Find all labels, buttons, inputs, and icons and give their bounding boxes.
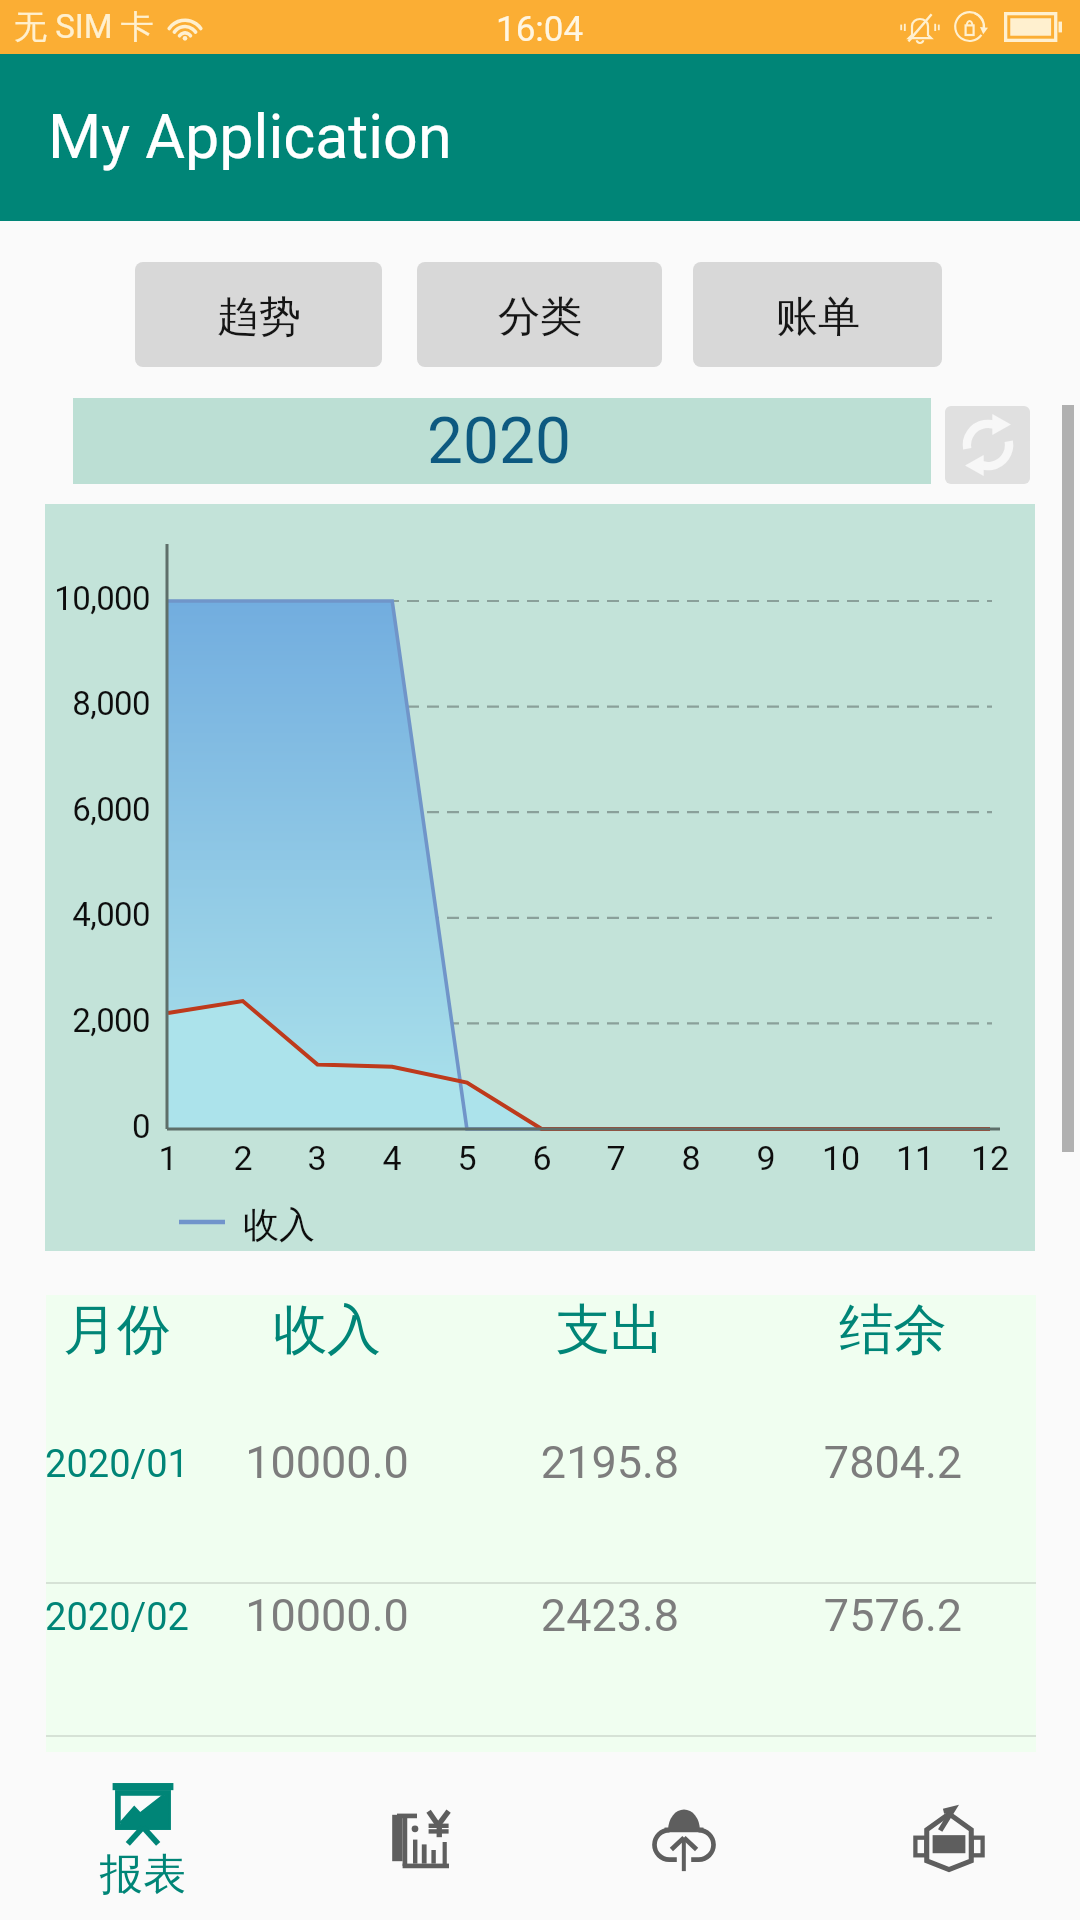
staticText: 2020: [427, 404, 571, 479]
staticText: 8,000: [0, 684, 150, 723]
staticText: 10000.0: [177, 1742, 477, 1795]
staticText: My Application: [48, 101, 452, 172]
staticText: 1967.0: [460, 1742, 760, 1795]
staticText: 收入: [177, 1296, 477, 1364]
staticText: 0: [0, 1107, 150, 1146]
staticText: 账单: [776, 291, 860, 344]
staticText: 分类: [498, 291, 582, 344]
button[interactable]: 上传: [540, 1752, 810, 1920]
staticText: 2020/01: [0, 1442, 267, 1487]
staticText: 10000.0: [177, 1436, 477, 1489]
staticText: 2423.8: [460, 1589, 760, 1642]
staticText: 12: [950, 1138, 1030, 1178]
staticText: 6: [502, 1138, 582, 1178]
staticText: 11: [875, 1138, 955, 1178]
staticText: 收入: [243, 1202, 315, 1247]
button[interactable]: 2020/02: [46, 1582, 1036, 1735]
staticText: 8: [651, 1138, 731, 1178]
button[interactable]: Refresh: [945, 406, 1030, 484]
staticText: 2195.8: [460, 1436, 760, 1489]
staticText: 3: [277, 1138, 357, 1178]
staticText: 8033.0: [743, 1742, 1043, 1795]
staticText: 6,000: [0, 790, 150, 829]
button[interactable]: 趋势: [135, 262, 382, 367]
staticText: 2,000: [0, 1001, 150, 1040]
button[interactable]: 2020/01: [46, 1429, 1036, 1582]
staticText: 4,000: [0, 895, 150, 934]
button[interactable]: 分类: [417, 262, 662, 367]
staticText: 报表: [100, 1848, 186, 1902]
staticText: 16:04: [496, 9, 584, 50]
staticText: 5: [427, 1138, 507, 1178]
staticText: 趋势: [217, 291, 301, 344]
staticText: 7576.2: [743, 1589, 1043, 1642]
button[interactable]: 账本: [270, 1752, 540, 1920]
staticText: 9: [726, 1138, 806, 1178]
staticText: 10000.0: [177, 1589, 477, 1642]
staticText: 10,000: [0, 579, 150, 618]
staticText: 无 SIM 卡: [14, 6, 154, 48]
staticText: 7804.2: [743, 1436, 1043, 1489]
button[interactable]: 2020: [73, 398, 931, 484]
staticText: 月份: [0, 1296, 267, 1364]
staticText: 1: [128, 1138, 208, 1178]
button[interactable]: 我的: [810, 1752, 1080, 1920]
button[interactable]: 2020/03: [46, 1735, 1036, 1888]
staticText: 7: [576, 1138, 656, 1178]
staticText: 2: [203, 1138, 283, 1178]
staticText: 4: [352, 1138, 432, 1178]
button[interactable]: 账单: [693, 262, 942, 367]
staticText: 结余: [743, 1296, 1043, 1364]
staticText: 2020/02: [0, 1595, 267, 1640]
button[interactable]: 报表: [0, 1752, 270, 1920]
staticText: 支出: [460, 1296, 760, 1364]
staticText: 2020/03: [0, 1748, 267, 1793]
staticText: 10: [801, 1138, 881, 1178]
